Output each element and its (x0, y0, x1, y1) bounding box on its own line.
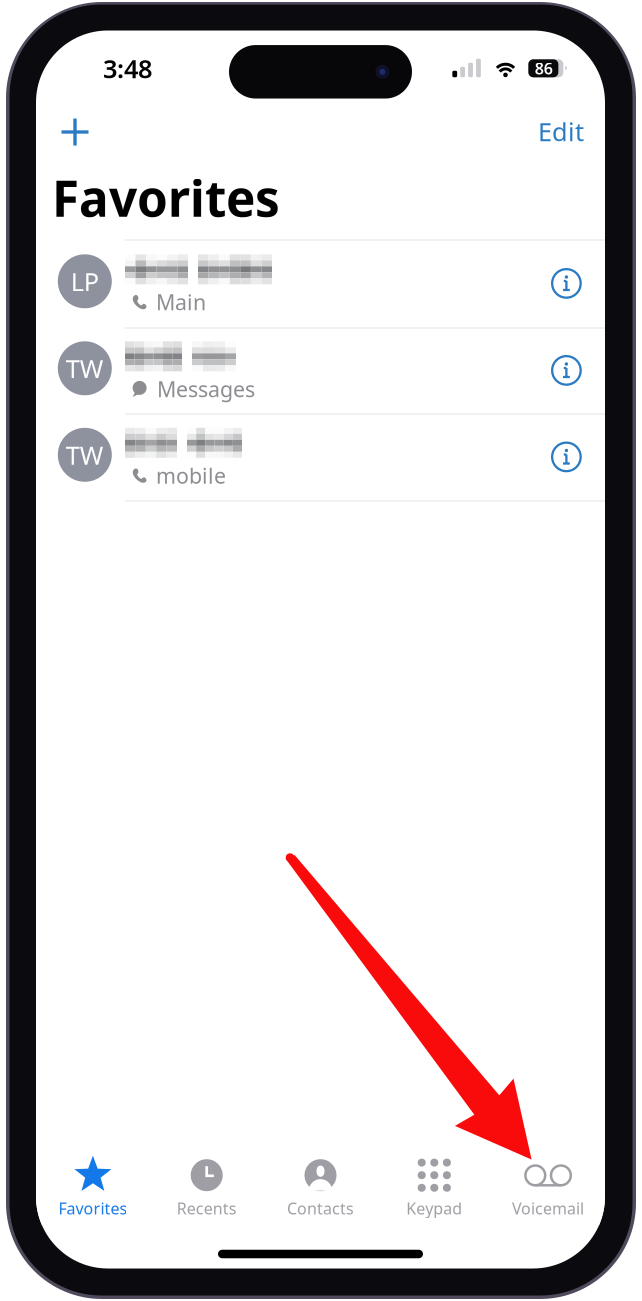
button[interactable]: Keypad (377, 1145, 491, 1225)
button[interactable]: LP (36, 240, 605, 328)
button[interactable]: TW (36, 327, 605, 415)
staticText: Keypad (406, 1198, 462, 1219)
button[interactable]: Voicemail (491, 1145, 605, 1225)
button[interactable]: Recents (150, 1145, 264, 1225)
button[interactable]: Edit (524, 107, 598, 155)
button[interactable]: Add favorite (48, 108, 102, 156)
staticText: 86 (535, 58, 553, 79)
button[interactable]: TW (36, 413, 605, 501)
staticText: Contacts (287, 1198, 354, 1219)
staticText: Edit (538, 115, 584, 148)
staticText: TW (66, 438, 104, 472)
staticText: Messages (157, 375, 255, 403)
staticText: Main (156, 288, 206, 316)
staticText: Favorites (52, 165, 280, 230)
staticText: 3:48 (103, 52, 152, 85)
button[interactable]: Contacts (264, 1145, 377, 1225)
staticText: mobile (156, 461, 226, 490)
staticText: Voicemail (512, 1198, 584, 1219)
staticText: Recents (177, 1198, 237, 1219)
button[interactable]: Favorites (36, 1145, 150, 1225)
staticText: Favorites (58, 1198, 127, 1219)
staticText: TW (66, 351, 104, 385)
staticText: LP (71, 264, 99, 298)
